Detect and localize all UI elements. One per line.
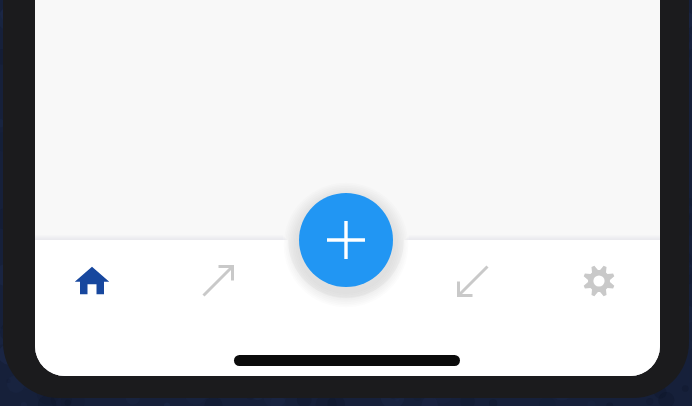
button[interactable]: Incoming calls [429, 240, 517, 336]
button[interactable]: Add [299, 193, 393, 287]
button[interactable]: Home [48, 240, 136, 336]
button[interactable]: Settings [555, 240, 643, 336]
button[interactable]: Outgoing calls [174, 240, 262, 336]
